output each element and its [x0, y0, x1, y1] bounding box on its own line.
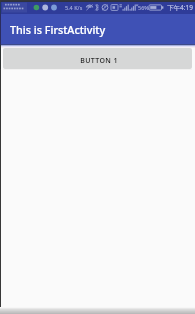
staticText: 5.4 K/s: [65, 4, 83, 11]
button[interactable]: BUTTON 1: [3, 48, 192, 69]
button[interactable]: This is FirstActivity: [0, 14, 195, 44]
staticText: 下午4:19: [167, 3, 193, 12]
staticText: BUTTON 1: [80, 56, 118, 66]
staticText: 56%: [138, 4, 149, 11]
staticText: This is FirstActivity: [10, 22, 106, 37]
